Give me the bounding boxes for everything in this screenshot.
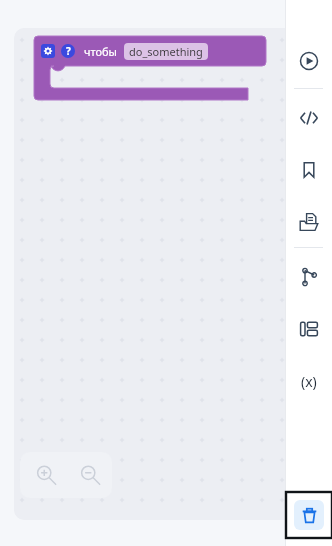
staticText: do_something [129, 44, 203, 59]
button[interactable]: (x) [292, 364, 326, 398]
button[interactable]: Layout [292, 312, 326, 346]
staticText: ? [66, 44, 71, 58]
button[interactable]: do_something [129, 44, 203, 59]
button[interactable]: Settings [41, 44, 55, 58]
staticText: чтобы [84, 44, 117, 59]
button[interactable]: Graph [292, 260, 326, 294]
button[interactable]: Code [292, 101, 326, 135]
button[interactable]: Zoom in [32, 461, 60, 489]
button[interactable]: Delete [286, 492, 332, 538]
button[interactable]: Files [292, 205, 326, 239]
button[interactable]: Run [292, 44, 326, 78]
button[interactable]: Bookmark [292, 153, 326, 187]
button[interactable]: Settings [34, 36, 266, 100]
button[interactable]: Zoom out [76, 461, 104, 489]
staticText: (x) [301, 372, 317, 391]
button[interactable]: Help [61, 44, 75, 58]
